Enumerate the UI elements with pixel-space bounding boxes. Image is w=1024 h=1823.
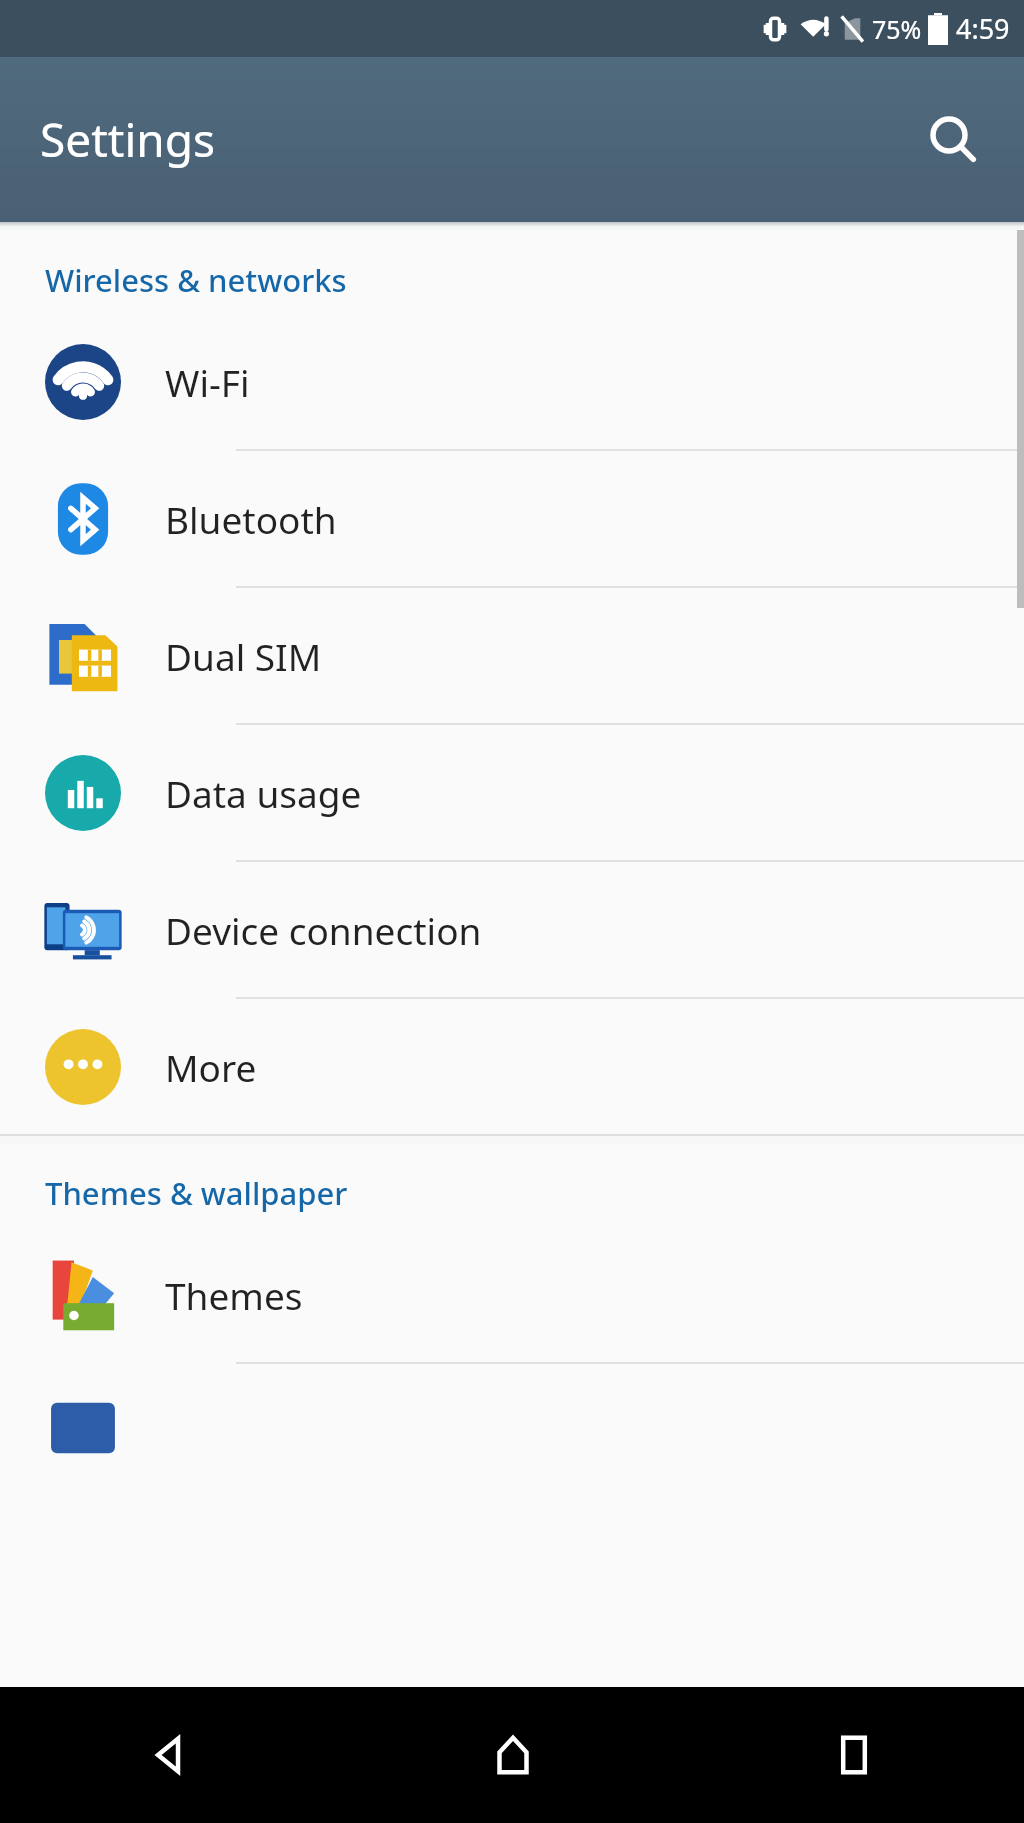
button[interactable]: Dual SIM: [0, 588, 1024, 725]
button[interactable]: More: [0, 999, 1024, 1134]
staticText: More: [165, 1042, 257, 1092]
button[interactable]: Back: [0, 1687, 342, 1823]
button[interactable]: Home: [342, 1687, 683, 1823]
staticText: 4:59: [956, 10, 1010, 47]
staticText: 75%: [872, 12, 922, 46]
staticText: Themes & wallpaper: [45, 1172, 348, 1214]
staticText: Wireless & networks: [45, 259, 347, 301]
button[interactable]: Data usage: [0, 725, 1024, 862]
staticText: Data usage: [165, 768, 362, 818]
button[interactable]: Wi-Fi: [0, 314, 1024, 451]
staticText: Wi-Fi: [165, 357, 250, 407]
staticText: Settings: [40, 108, 216, 171]
button[interactable]: Bluetooth: [0, 451, 1024, 588]
staticText: Bluetooth: [165, 494, 337, 544]
button[interactable]: Search: [908, 95, 998, 185]
staticText: Dual SIM: [165, 631, 322, 681]
button[interactable]: [0, 1364, 1024, 1424]
button[interactable]: Recent apps: [683, 1687, 1024, 1823]
button[interactable]: Device connection: [0, 862, 1024, 999]
staticText: Themes: [165, 1270, 303, 1320]
staticText: Device connection: [165, 905, 482, 955]
button[interactable]: Themes: [0, 1227, 1024, 1364]
